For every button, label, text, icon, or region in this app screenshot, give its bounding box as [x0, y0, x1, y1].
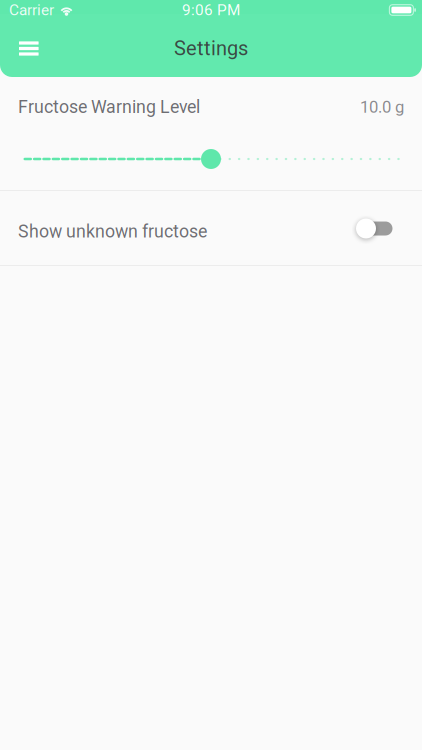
- staticText: Fructose Warning Level: [18, 97, 200, 117]
- staticText: 10.0 g: [360, 97, 404, 117]
- staticText: Show unknown fructose: [18, 221, 207, 242]
- staticText: Settings: [174, 37, 248, 60]
- staticText: 9:06 PM: [182, 1, 240, 19]
- button[interactable]: Show unknown fructose: [346, 208, 405, 248]
- button[interactable]: Menu: [0, 28, 56, 69]
- staticText: Carrier: [9, 1, 54, 19]
